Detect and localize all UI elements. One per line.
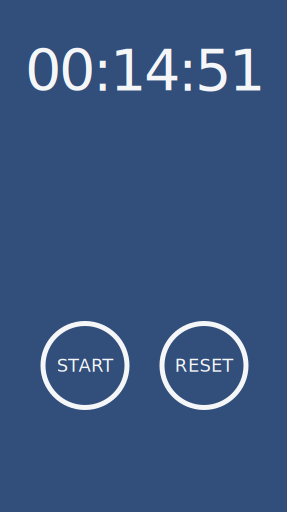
staticText: 00:14:51	[25, 38, 265, 104]
staticText: RESET	[175, 355, 233, 376]
button[interactable]: START	[40, 321, 129, 410]
button[interactable]: RESET	[159, 321, 248, 410]
staticText: START	[57, 355, 113, 376]
